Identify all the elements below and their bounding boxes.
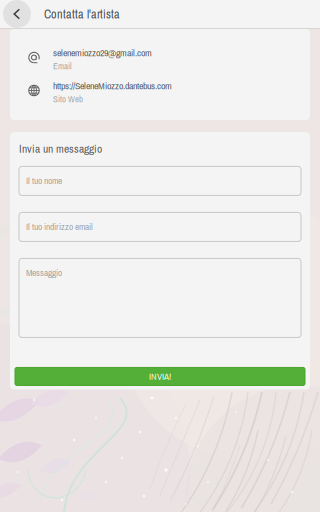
button[interactable]: Back [2, 0, 32, 28]
staticText: Messaggio [26, 266, 62, 279]
button[interactable]: INVIA! [15, 367, 305, 385]
button[interactable]: selenemiozzo29@gmail.com [10, 41, 310, 74]
staticText: Invia un messaggio [19, 141, 102, 156]
staticText: Il tuo nome [26, 174, 62, 187]
button[interactable]: Il tuo indirizzo email [19, 212, 301, 241]
staticText: selenemiozzo29@gmail.com [53, 46, 152, 59]
staticText: Sito Web [53, 93, 83, 105]
staticText: INVIA! [149, 370, 171, 383]
staticText: Contatta l'artista [44, 6, 120, 22]
staticText: Email [53, 60, 72, 72]
button[interactable]: Il tuo nome [19, 166, 301, 195]
staticText: Il tuo indirizzo email [26, 220, 93, 233]
staticText: https://SeleneMiozzo.dantebus.com [53, 79, 172, 92]
button[interactable]: Messaggio [19, 258, 301, 337]
button[interactable]: https://SeleneMiozzo.dantebus.com [10, 74, 310, 107]
